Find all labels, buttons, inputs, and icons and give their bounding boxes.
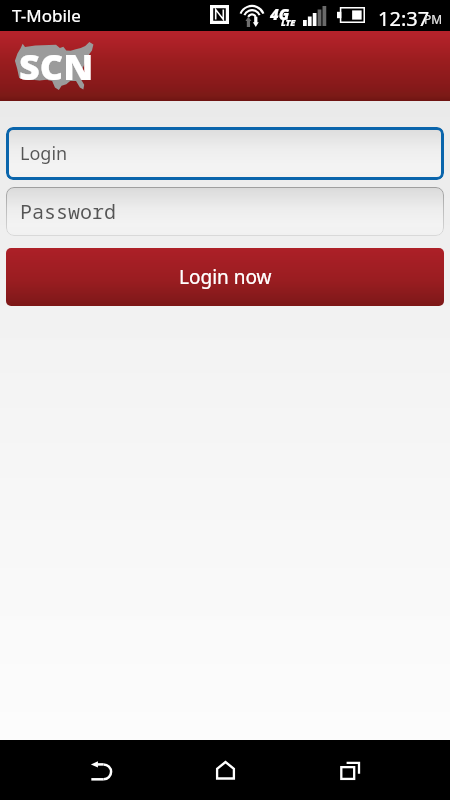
button[interactable]: Login now [6, 248, 444, 306]
button[interactable]: SCN logo [13, 40, 99, 94]
staticText: SCN [19, 42, 94, 91]
staticText: Login now [179, 264, 272, 290]
staticText: Login [20, 141, 68, 166]
button[interactable]: Home [192, 740, 258, 800]
staticText: 4G [270, 4, 290, 24]
staticText: T-Mobile [12, 4, 81, 27]
button[interactable]: Login [6, 127, 444, 180]
staticText: PM [424, 11, 443, 27]
button[interactable]: Recent apps [317, 740, 383, 800]
staticText: 12:37 [378, 5, 430, 32]
staticText: Password [20, 198, 116, 225]
button[interactable]: Password [6, 187, 444, 236]
staticText: LTE [281, 16, 296, 28]
button[interactable]: Back [68, 740, 134, 800]
